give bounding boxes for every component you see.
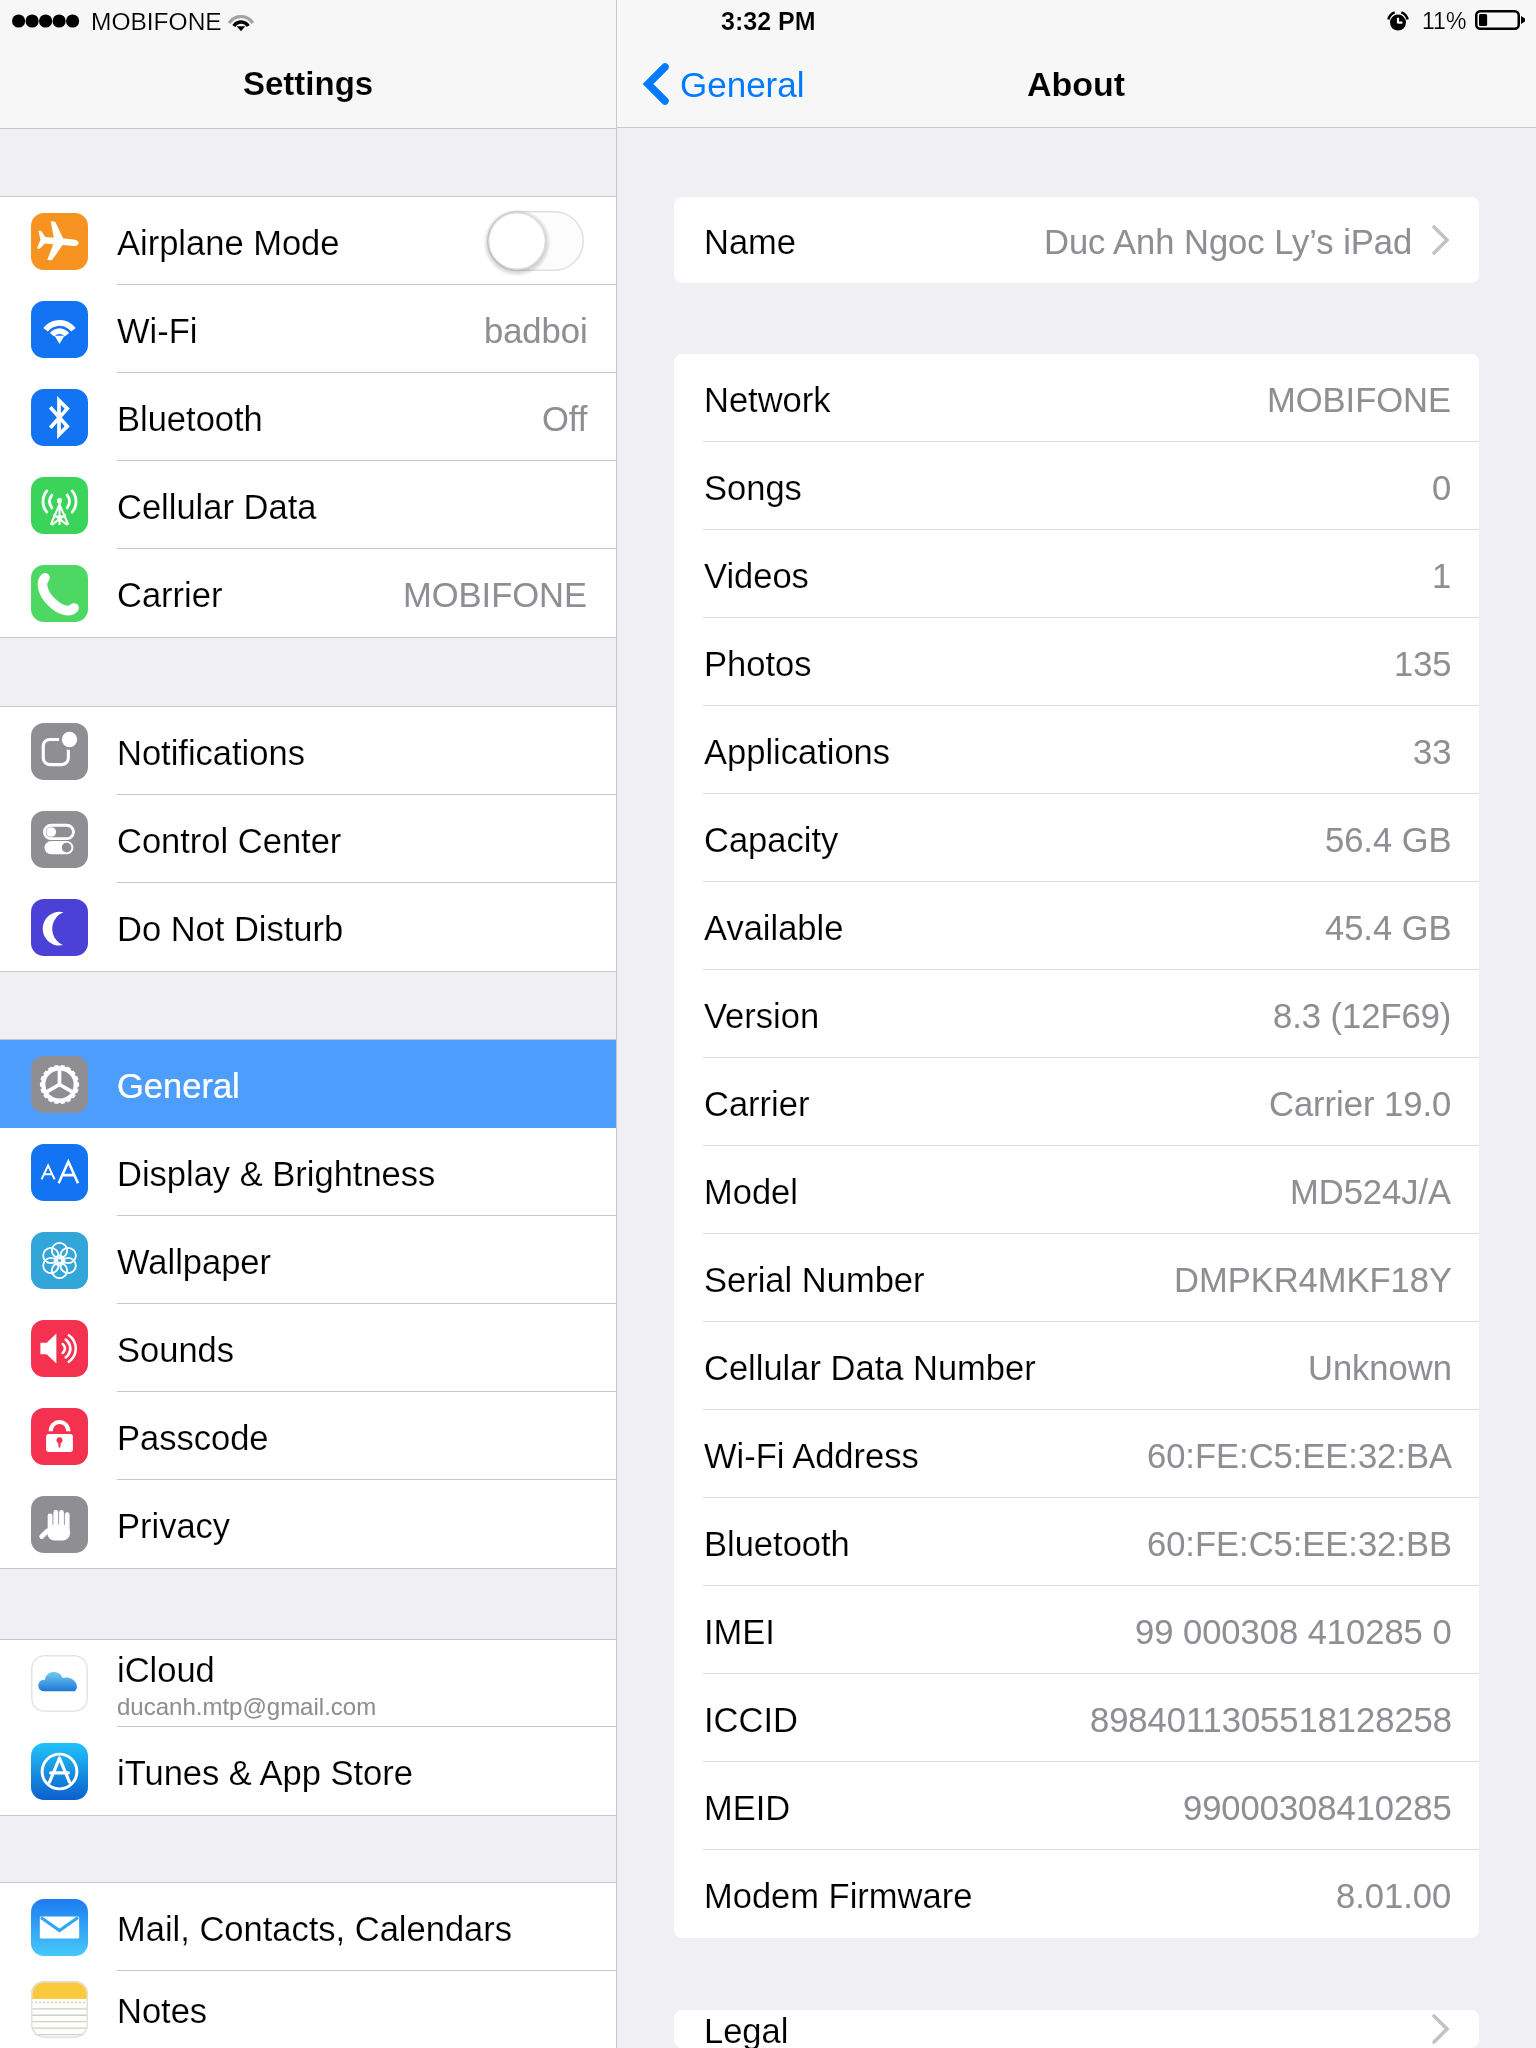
staticText: 135 bbox=[1394, 645, 1452, 684]
staticText: Cellular Data bbox=[117, 488, 317, 527]
staticText: 3:32 PM bbox=[721, 7, 816, 35]
button[interactable]: IMEI bbox=[674, 1586, 1479, 1674]
button[interactable]: Capacity bbox=[674, 794, 1479, 882]
button[interactable]: Videos bbox=[674, 530, 1479, 618]
button[interactable]: Model bbox=[674, 1146, 1479, 1234]
staticText: Off bbox=[542, 400, 588, 439]
staticText: DMPKR4MKF18Y bbox=[1174, 1261, 1452, 1300]
button[interactable]: Photos bbox=[674, 618, 1479, 706]
button[interactable]: Bluetooth bbox=[0, 373, 616, 461]
button[interactable]: Display & Brightness bbox=[0, 1128, 616, 1216]
button[interactable]: Modem Firmware bbox=[674, 1850, 1479, 1938]
staticText: Notes bbox=[117, 1992, 208, 2031]
button[interactable]: ICCID bbox=[674, 1674, 1479, 1762]
staticText: 0 bbox=[1432, 469, 1452, 508]
staticText: General bbox=[680, 65, 805, 104]
staticText: Airplane Mode bbox=[117, 224, 340, 263]
button[interactable]: Applications bbox=[674, 706, 1479, 794]
button[interactable]: Network bbox=[674, 354, 1479, 442]
staticText: Sounds bbox=[117, 1331, 235, 1370]
button[interactable]: General bbox=[617, 40, 823, 128]
button[interactable]: Carrier bbox=[0, 549, 616, 637]
staticText: Carrier bbox=[704, 1085, 810, 1124]
staticText: Applications bbox=[704, 733, 891, 772]
staticText: Songs bbox=[704, 469, 802, 508]
button[interactable]: Mail, Contacts, Calendars bbox=[0, 1883, 616, 1971]
staticText: Bluetooth bbox=[117, 400, 263, 439]
staticText: IMEI bbox=[704, 1613, 775, 1652]
button[interactable]: Sounds bbox=[0, 1304, 616, 1392]
staticText: Notifications bbox=[117, 734, 305, 773]
staticText: 8.01.00 bbox=[1336, 1877, 1452, 1916]
staticText: Carrier bbox=[117, 576, 223, 615]
staticText: Version bbox=[704, 997, 820, 1036]
staticText: Modem Firmware bbox=[704, 1877, 973, 1916]
staticText: ducanh.mtp@gmail.com bbox=[117, 1693, 377, 1720]
staticText: MEID bbox=[704, 1789, 791, 1828]
staticText: Model bbox=[704, 1173, 798, 1212]
staticText: Passcode bbox=[117, 1419, 269, 1458]
button[interactable]: Privacy bbox=[0, 1480, 616, 1568]
button[interactable]: Do Not Disturb bbox=[0, 883, 616, 971]
button[interactable]: Bluetooth bbox=[674, 1498, 1479, 1586]
button[interactable]: Airplane Mode toggle bbox=[487, 211, 584, 271]
staticText: Settings bbox=[243, 65, 374, 102]
staticText: General bbox=[117, 1067, 240, 1106]
staticText: Carrier 19.0 bbox=[1269, 1085, 1452, 1124]
staticText: Serial Number bbox=[704, 1261, 925, 1300]
staticText: 33 bbox=[1413, 733, 1452, 772]
staticText: Photos bbox=[704, 645, 812, 684]
button[interactable]: MEID bbox=[674, 1762, 1479, 1850]
button[interactable]: Cellular Data Number bbox=[674, 1322, 1479, 1410]
staticText: 60:FE:C5:EE:32:BA bbox=[1147, 1437, 1452, 1476]
staticText: Available bbox=[704, 909, 844, 948]
button[interactable]: Available bbox=[674, 882, 1479, 970]
staticText: 99 000308 410285 0 bbox=[1135, 1613, 1452, 1652]
staticText: Cellular Data Number bbox=[704, 1349, 1036, 1388]
button[interactable]: Legal bbox=[674, 2010, 1479, 2048]
staticText: 45.4 GB bbox=[1325, 909, 1452, 948]
button[interactable]: Carrier bbox=[674, 1058, 1479, 1146]
button[interactable]: Passcode bbox=[0, 1392, 616, 1480]
staticText: Privacy bbox=[117, 1507, 231, 1546]
staticText: Name bbox=[704, 223, 797, 262]
staticText: 99000308410285 bbox=[1183, 1789, 1452, 1828]
button[interactable]: Cellular Data bbox=[0, 461, 616, 549]
staticText: Wallpaper bbox=[117, 1243, 272, 1282]
staticText: About bbox=[1027, 65, 1126, 103]
button[interactable]: Serial Number bbox=[674, 1234, 1479, 1322]
staticText: 11% bbox=[1422, 8, 1467, 34]
staticText: Unknown bbox=[1308, 1349, 1452, 1388]
staticText: 8984011305518128258 bbox=[1090, 1701, 1452, 1740]
button[interactable]: Wallpaper bbox=[0, 1216, 616, 1304]
button[interactable]: Songs bbox=[674, 442, 1479, 530]
button[interactable]: Wi-Fi bbox=[0, 285, 616, 373]
staticText: Do Not Disturb bbox=[117, 910, 344, 949]
staticText: Duc Anh Ngoc Ly’s iPad bbox=[1044, 223, 1413, 262]
staticText: Mail, Contacts, Calendars bbox=[117, 1910, 512, 1949]
staticText: iCloud bbox=[117, 1651, 215, 1690]
staticText: MOBIFONE bbox=[91, 8, 222, 35]
staticText: MOBIFONE bbox=[403, 576, 588, 615]
button[interactable]: Airplane Mode bbox=[0, 197, 616, 285]
staticText: Wi-Fi bbox=[117, 312, 198, 351]
staticText: 60:FE:C5:EE:32:BB bbox=[1147, 1525, 1452, 1564]
staticText: ICCID bbox=[704, 1701, 798, 1740]
staticText: Control Center bbox=[117, 822, 342, 861]
button[interactable]: Notes bbox=[0, 1971, 616, 2048]
staticText: 1 bbox=[1432, 557, 1452, 596]
staticText: Bluetooth bbox=[704, 1525, 850, 1564]
staticText: MOBIFONE bbox=[1267, 381, 1452, 420]
button[interactable]: iCloud bbox=[0, 1640, 616, 1727]
staticText: Network bbox=[704, 381, 831, 420]
button[interactable]: Notifications bbox=[0, 707, 616, 795]
button[interactable]: Name bbox=[674, 197, 1479, 283]
button[interactable]: Version bbox=[674, 970, 1479, 1058]
button[interactable]: Wi-Fi Address bbox=[674, 1410, 1479, 1498]
button[interactable]: Control Center bbox=[0, 795, 616, 883]
staticText: iTunes & App Store bbox=[117, 1754, 413, 1793]
button[interactable]: iTunes & App Store bbox=[0, 1727, 616, 1815]
staticText: 56.4 GB bbox=[1325, 821, 1452, 860]
staticText: Display & Brightness bbox=[117, 1155, 436, 1194]
button[interactable]: General bbox=[0, 1040, 616, 1128]
